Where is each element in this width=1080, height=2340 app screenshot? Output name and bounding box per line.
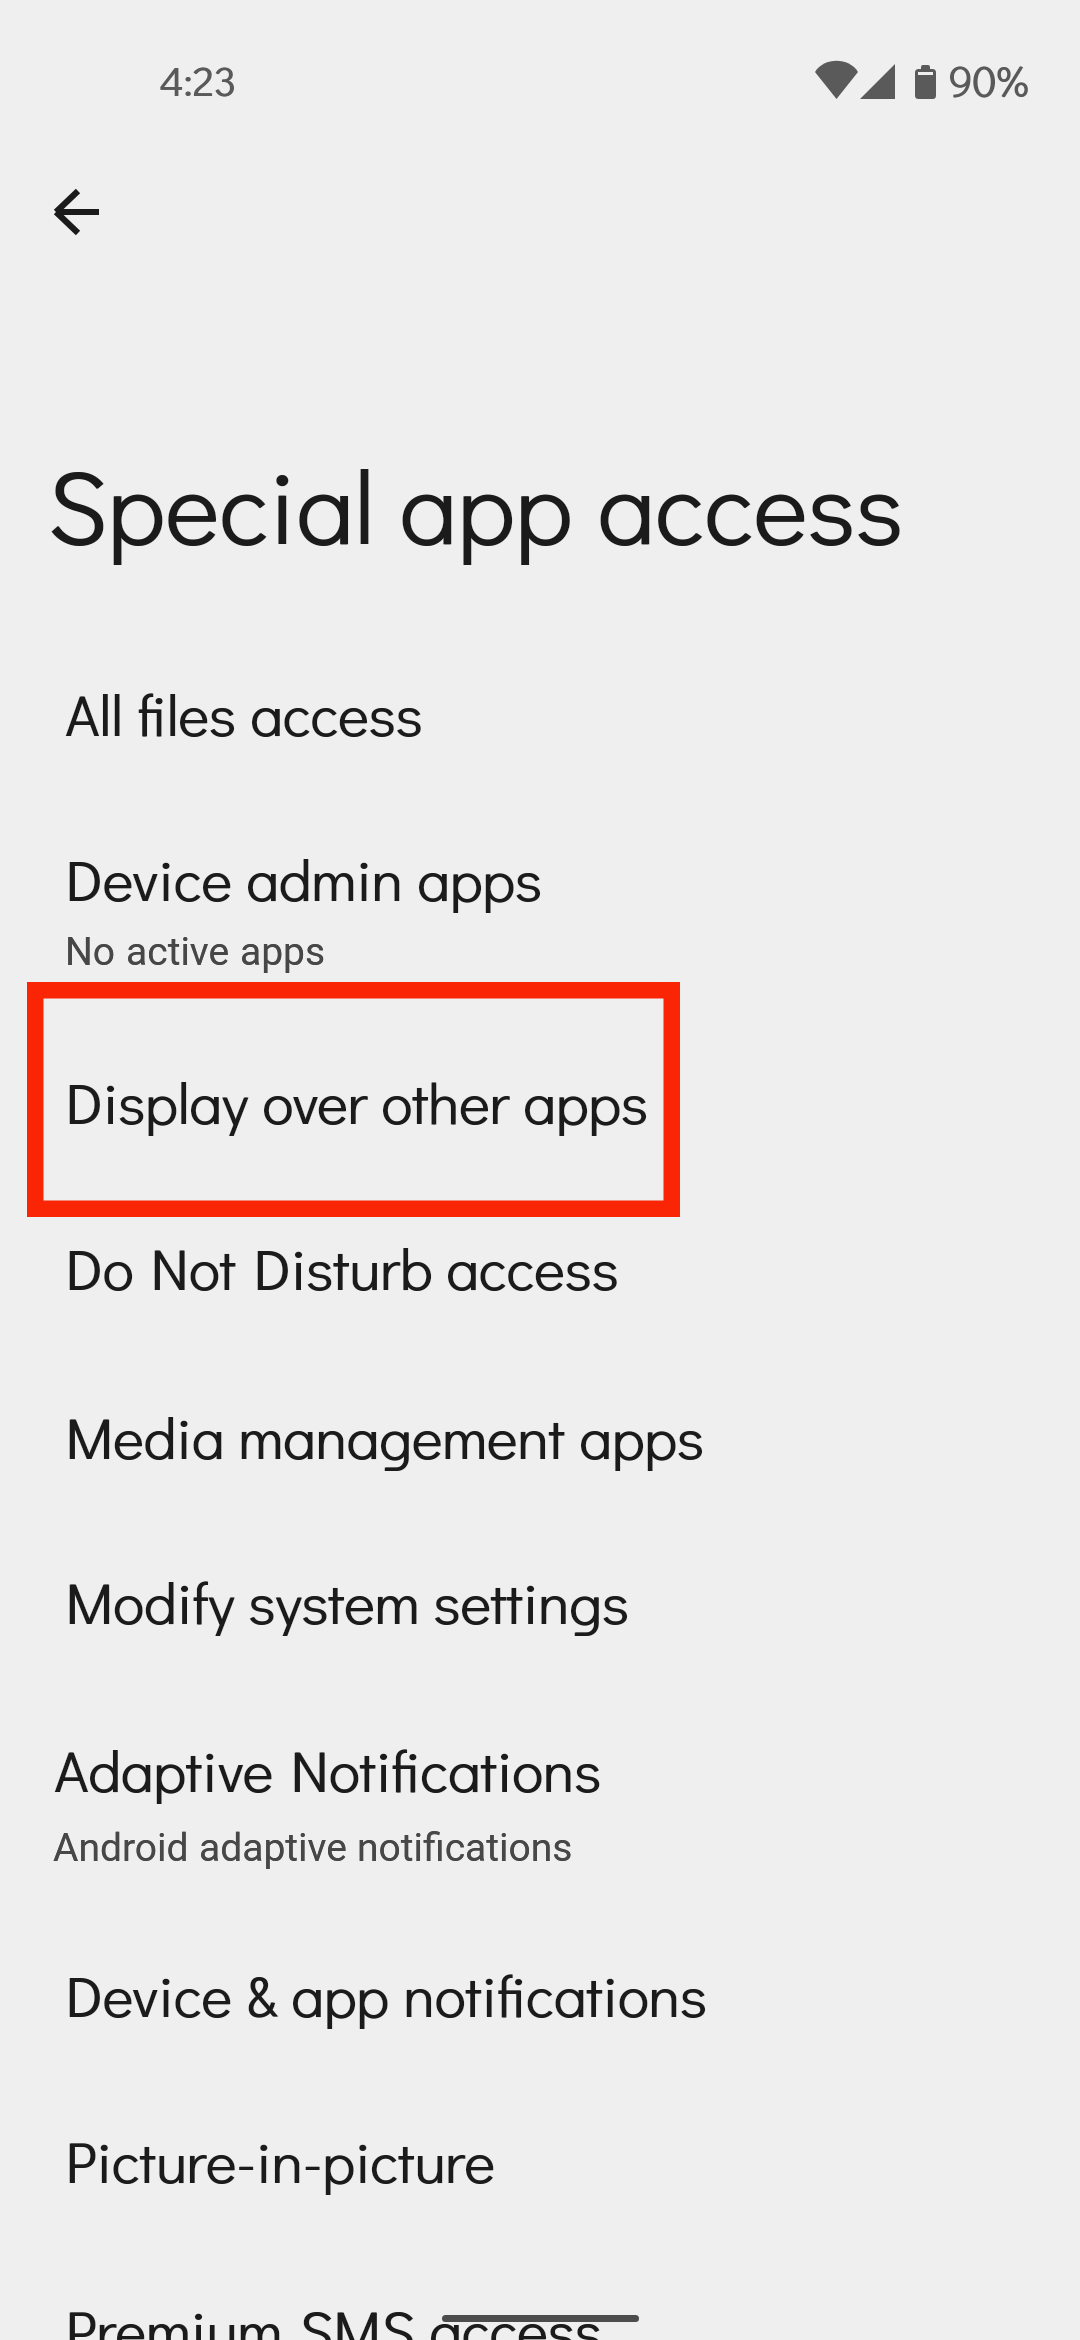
staticText: Disturb: [254, 1229, 433, 1305]
staticText: notifications: [357, 1825, 573, 1871]
staticText: access: [430, 2291, 603, 2340]
button[interactable]: Adaptive: [54, 1731, 601, 1807]
button[interactable]: All: [65, 675, 423, 751]
staticText: SMS: [300, 2291, 416, 2340]
staticText: apps: [524, 1063, 649, 1139]
staticText: other: [382, 1063, 510, 1139]
staticText: access: [250, 675, 423, 751]
staticText: access: [597, 436, 903, 571]
button[interactable]: Premium: [65, 2291, 602, 2340]
staticText: management: [238, 1398, 565, 1474]
button[interactable]: Device: [65, 1956, 707, 2032]
staticText: Device: [65, 840, 232, 916]
staticText: apps: [418, 840, 543, 916]
staticText: All: [66, 675, 124, 751]
staticText: notifications: [403, 1956, 707, 2032]
staticText: management: [239, 1398, 566, 1474]
staticText: Adaptive: [55, 1731, 274, 1807]
staticText: Display: [66, 1063, 249, 1139]
staticText: Android: [53, 1825, 189, 1871]
staticText: apps: [240, 929, 326, 975]
button[interactable]: Media: [65, 1398, 704, 1474]
staticText: 4:23: [160, 52, 237, 107]
staticText: notifications: [404, 1956, 708, 2032]
staticText: 90%: [949, 52, 1029, 108]
staticText: system: [248, 1563, 419, 1639]
staticText: access: [429, 2291, 602, 2340]
staticText: Not: [151, 1229, 237, 1305]
staticText: adaptive: [199, 1825, 347, 1871]
staticText: Do: [66, 1229, 134, 1305]
staticText: &: [247, 1956, 278, 2032]
staticText: Not: [150, 1229, 236, 1305]
button[interactable]: Picture-in-picture: [65, 2122, 495, 2198]
staticText: Android: [53, 1825, 189, 1871]
staticText: No: [65, 929, 116, 975]
staticText: Picture-in-picture: [65, 2122, 495, 2198]
staticText: Device: [65, 1956, 232, 2032]
staticText: Special: [48, 436, 376, 571]
staticText: access: [446, 1229, 619, 1305]
staticText: apps: [523, 1063, 648, 1139]
staticText: Adaptive: [54, 1731, 273, 1807]
staticText: files: [137, 675, 236, 751]
button[interactable]: Do: [65, 1229, 619, 1305]
staticText: Special: [47, 436, 375, 571]
staticText: settings: [434, 1563, 630, 1639]
staticText: app: [291, 1956, 389, 2032]
staticText: settings: [433, 1563, 629, 1639]
staticText: Device: [66, 1956, 233, 2032]
staticText: Notifications: [290, 1731, 601, 1807]
staticText: Premium: [66, 2291, 283, 2340]
button[interactable]: Display: [65, 1063, 648, 1139]
staticText: SMS: [299, 2291, 415, 2340]
staticText: other: [381, 1063, 509, 1139]
staticText: notifications: [357, 1825, 573, 1871]
staticText: Display: [65, 1063, 248, 1139]
staticText: apps: [580, 1398, 705, 1474]
button[interactable]: Navigate up: [4, 160, 108, 264]
staticText: Premium: [65, 2291, 282, 2340]
staticText: adaptive: [199, 1825, 347, 1871]
button[interactable]: Modify: [65, 1563, 629, 1639]
staticText: Notifications: [291, 1731, 602, 1807]
staticText: Do: [65, 1229, 133, 1305]
staticText: admin: [247, 840, 404, 916]
staticText: apps: [240, 929, 326, 975]
staticText: app: [400, 436, 574, 571]
staticText: apps: [579, 1398, 704, 1474]
staticText: No: [65, 929, 116, 975]
staticText: Device: [66, 840, 233, 916]
staticText: Modify: [66, 1563, 235, 1639]
staticText: 90%: [948, 52, 1028, 108]
staticText: &: [246, 1956, 277, 2032]
staticText: access: [598, 436, 904, 571]
staticText: apps: [417, 840, 542, 916]
staticText: app: [292, 1956, 390, 2032]
staticText: over: [263, 1063, 368, 1139]
staticText: All: [65, 675, 123, 751]
staticText: Picture-in-picture: [66, 2122, 496, 2198]
staticText: Media: [66, 1398, 225, 1474]
staticText: access: [447, 1229, 620, 1305]
staticText: files: [138, 675, 237, 751]
staticText: Disturb: [253, 1229, 432, 1305]
staticText: Media: [65, 1398, 224, 1474]
staticText: over: [262, 1063, 367, 1139]
staticText: access: [251, 675, 424, 751]
button[interactable]: Device: [65, 840, 542, 916]
staticText: system: [249, 1563, 420, 1639]
staticText: admin: [246, 840, 403, 916]
staticText: app: [399, 436, 573, 571]
staticText: active: [126, 929, 230, 975]
staticText: 4:23: [159, 52, 236, 107]
staticText: Modify: [65, 1563, 234, 1639]
staticText: active: [126, 929, 230, 975]
